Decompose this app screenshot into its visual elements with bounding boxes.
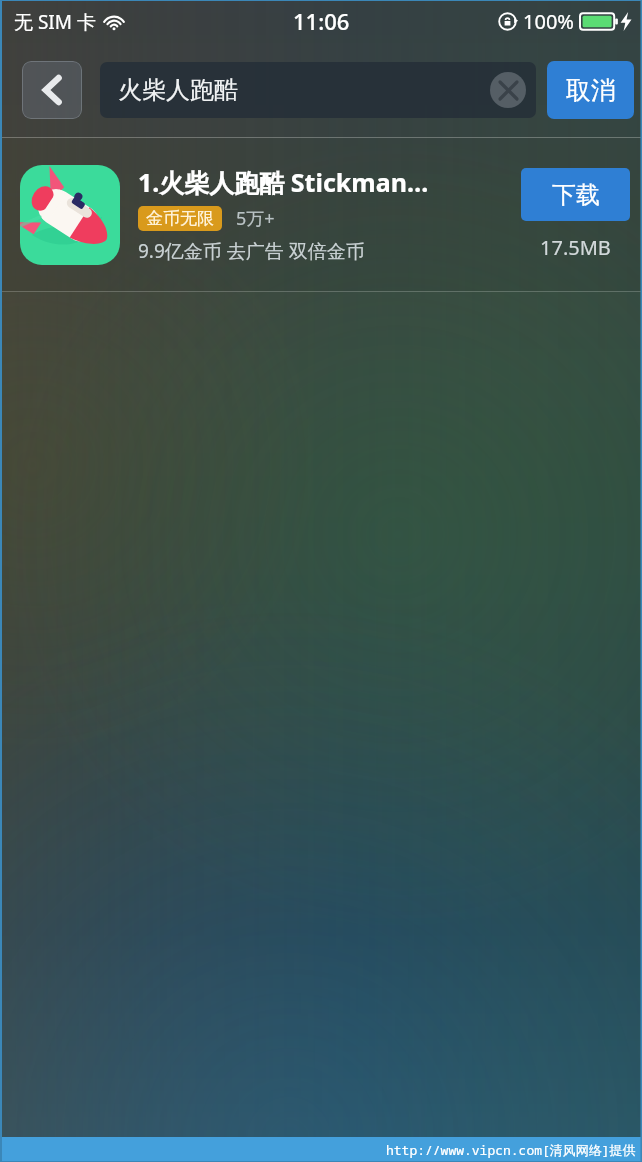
staticText: http://www.vipcn.com[清风网络]提供	[386, 1141, 636, 1159]
staticText: 11:06	[293, 6, 350, 36]
button[interactable]: Clear search	[490, 72, 526, 108]
button[interactable]: 下载	[521, 168, 630, 221]
staticText: 无 SIM 卡	[14, 9, 96, 35]
button[interactable]: 取消	[547, 61, 634, 119]
staticText: 9.9亿金币 去广告 双倍金币	[138, 238, 365, 264]
button[interactable]: 火柴人跑酷	[100, 62, 536, 118]
staticText: 金币无限	[146, 208, 214, 229]
staticText: 5万+	[236, 206, 275, 231]
staticText: 取消	[566, 75, 616, 106]
staticText: 1.火柴人跑酷 Stickman…	[138, 165, 429, 199]
staticText: 17.5MB	[540, 234, 611, 261]
staticText: 火柴人跑酷	[118, 75, 238, 105]
button[interactable]: 1.火柴人跑酷 Stickman…	[0, 138, 642, 291]
staticText: 100%	[523, 8, 574, 35]
button[interactable]: Back	[22, 61, 82, 119]
staticText: 下载	[552, 180, 600, 210]
